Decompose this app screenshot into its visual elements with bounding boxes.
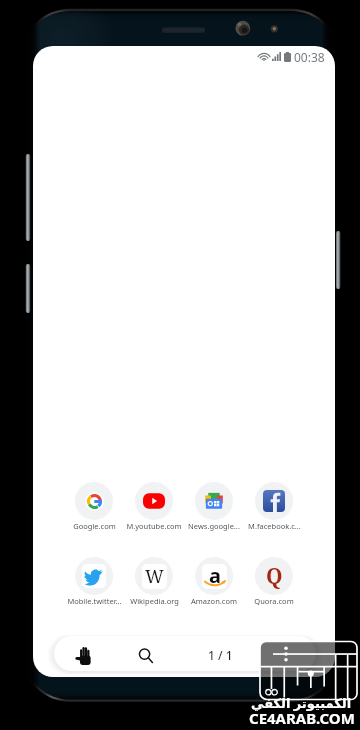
button[interactable]: Mobile.twitter...: [64, 557, 124, 606]
button[interactable]: Q: [244, 557, 304, 606]
button[interactable]: Google.com: [64, 482, 124, 531]
staticText: a: [209, 564, 221, 587]
staticText: 1 / 1: [208, 647, 233, 663]
button[interactable]: M.facebook.c...: [244, 482, 304, 531]
button[interactable]: Pan: [57, 636, 109, 671]
staticText: W: [145, 564, 164, 589]
button[interactable]: a: [184, 557, 244, 606]
button[interactable]: Search: [120, 636, 172, 671]
staticText: M.youtube.com: [126, 521, 182, 531]
button[interactable]: 1 / 1: [186, 636, 254, 671]
staticText: Amazon.com: [191, 596, 237, 606]
staticText: Q: [266, 562, 283, 591]
button[interactable]: News.google...: [184, 482, 244, 531]
staticText: News.google...: [188, 521, 240, 531]
button[interactable]: W: [124, 557, 184, 606]
staticText: 00:38: [294, 49, 325, 65]
button[interactable]: M.youtube.com: [124, 482, 184, 531]
staticText: Mobile.twitter...: [67, 596, 122, 606]
staticText: Quora.com: [254, 596, 294, 606]
staticText: CE4ARAB.COM: [249, 708, 355, 728]
staticText: Google.com: [73, 521, 116, 531]
staticText: الكمبيوتر الكفي: [251, 694, 352, 712]
staticText: M.facebook.c...: [248, 521, 301, 531]
staticText: Wikipedia.org: [130, 596, 179, 606]
